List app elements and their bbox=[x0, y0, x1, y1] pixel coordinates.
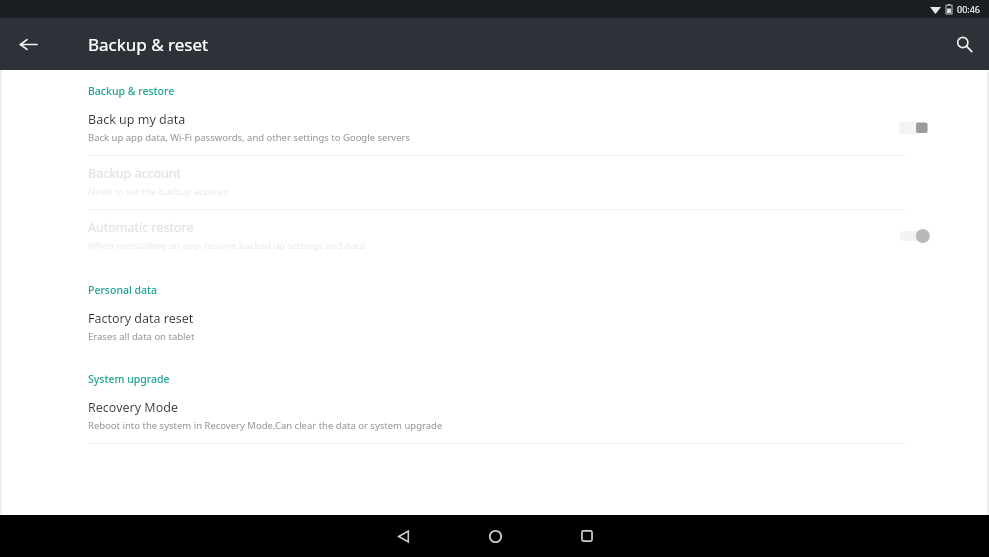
staticText: Back up app data, Wi-Fi passwords, and o… bbox=[88, 131, 410, 144]
staticText: Personal data bbox=[88, 283, 158, 297]
staticText: Automatic restore bbox=[88, 219, 194, 236]
button[interactable]: Home bbox=[466, 515, 524, 557]
button[interactable]: Recovery Mode bbox=[0, 390, 989, 443]
staticText: Backup & reset bbox=[88, 33, 209, 56]
button[interactable]: Back bbox=[8, 24, 48, 64]
button[interactable]: Back up my data bbox=[893, 115, 939, 141]
button[interactable]: Back bbox=[374, 515, 432, 557]
staticText: Factory data reset bbox=[88, 310, 194, 327]
button[interactable]: Factory data reset bbox=[0, 301, 989, 354]
button[interactable]: Recent apps bbox=[558, 515, 616, 557]
staticText: System upgrade bbox=[88, 372, 170, 386]
staticText: Reboot into the system in Recovery Mode.… bbox=[88, 419, 443, 432]
staticText: Erases all data on tablet bbox=[88, 330, 195, 343]
staticText: When reinstalling an app, restore backed… bbox=[88, 239, 365, 252]
staticText: Backup account bbox=[88, 165, 182, 182]
button[interactable]: Automatic restore bbox=[0, 210, 989, 263]
staticText: Need to set the backup account bbox=[88, 185, 230, 198]
staticText: Backup & restore bbox=[88, 84, 175, 98]
button[interactable]: Back up my data bbox=[0, 102, 989, 155]
staticText: 00:46 bbox=[957, 3, 981, 15]
staticText: Back up my data bbox=[88, 111, 186, 128]
staticText: Recovery Mode bbox=[88, 399, 178, 416]
button[interactable]: Search bbox=[943, 23, 985, 65]
